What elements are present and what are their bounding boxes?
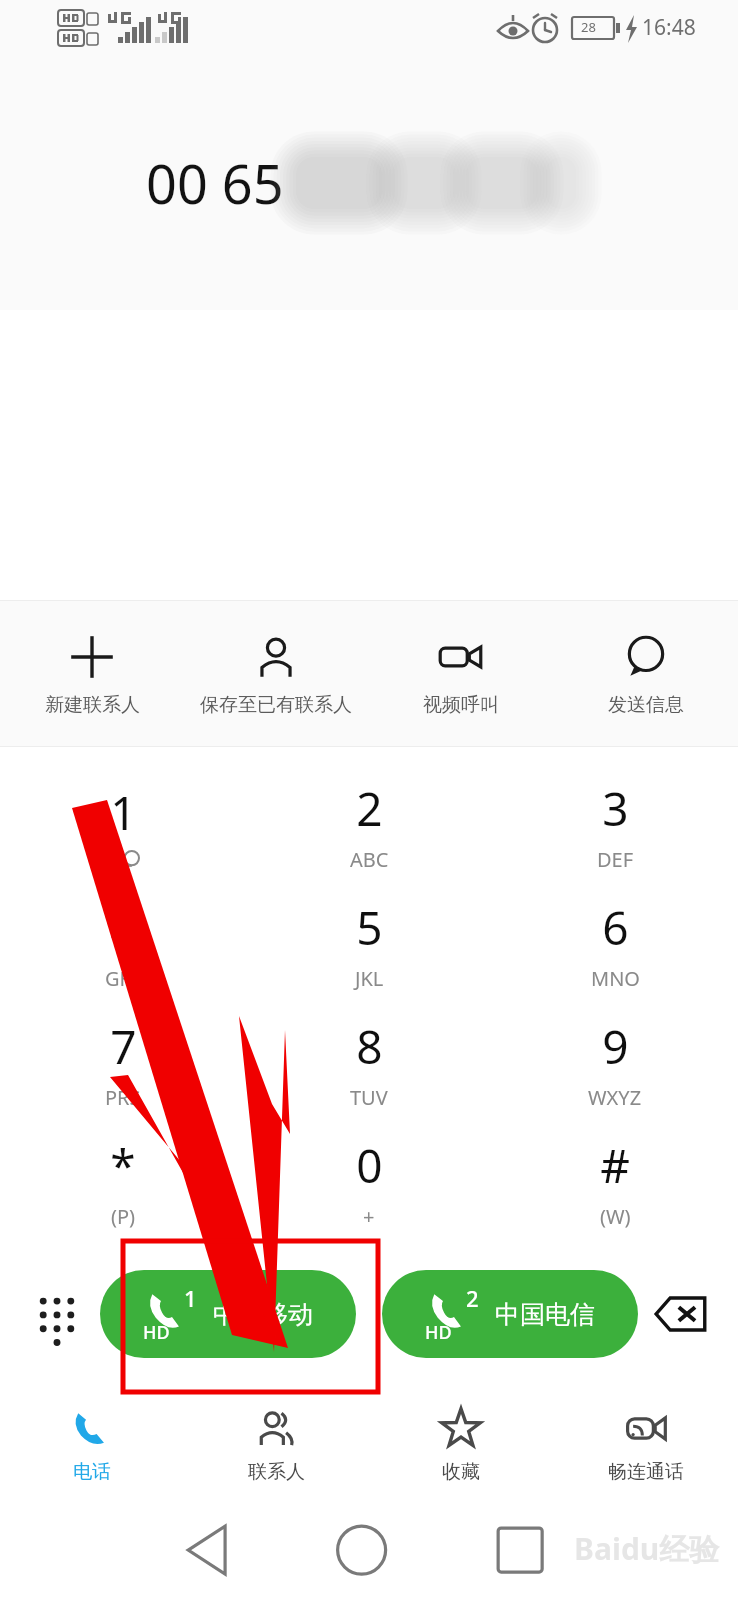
staticText: 2 [466, 1283, 479, 1313]
staticText: 收藏 [442, 1460, 480, 1484]
staticText: 1 [110, 781, 137, 844]
staticText: 0 [356, 1134, 383, 1197]
button[interactable]: 发送信息 [553, 601, 738, 746]
staticText: 9 [602, 1015, 629, 1078]
staticText: ABC [350, 846, 389, 873]
button[interactable]: # [492, 1122, 738, 1241]
staticText: 5 [356, 896, 383, 959]
staticText: * [110, 1134, 136, 1197]
button[interactable]: * [0, 1122, 246, 1241]
staticText: GHI [105, 965, 142, 992]
button[interactable]: 电话 [0, 1386, 184, 1504]
staticText: 2 [356, 777, 383, 840]
button[interactable]: Backspace [638, 1271, 724, 1357]
staticText: 视频呼叫 [423, 693, 499, 717]
staticText: TUV [350, 1084, 388, 1111]
button[interactable]: 5 [246, 884, 492, 1003]
staticText: 8 [356, 1015, 383, 1078]
staticText: Baidu经验 [574, 1528, 720, 1569]
button[interactable]: 2 [382, 1270, 638, 1358]
button[interactable]: 4 [0, 884, 246, 1003]
button[interactable]: 联系人 [184, 1386, 368, 1504]
staticText: # [600, 1134, 630, 1197]
button[interactable]: 畅连通话 [553, 1386, 738, 1504]
staticText: 新建联系人 [45, 693, 140, 717]
button[interactable]: 6 [492, 884, 738, 1003]
button[interactable]: 1 [0, 765, 246, 884]
staticText: + [363, 1203, 375, 1230]
staticText: 发送信息 [608, 693, 684, 717]
button[interactable]: 保存至已有联系人 [184, 601, 368, 746]
staticText: 4 [110, 896, 137, 959]
staticText: JKL [355, 965, 384, 992]
staticText: HD [143, 1320, 170, 1345]
staticText: 中国移动 [213, 1299, 313, 1330]
staticText: 3 [602, 777, 629, 840]
button[interactable]: 9 [492, 1003, 738, 1122]
button[interactable]: 1 [100, 1270, 356, 1358]
button[interactable]: 3 [492, 765, 738, 884]
staticText: 6 [602, 896, 629, 959]
staticText: HD [425, 1320, 452, 1345]
staticText: 联系人 [248, 1460, 305, 1484]
button[interactable]: 7 [0, 1003, 246, 1122]
button[interactable]: 收藏 [368, 1386, 553, 1504]
button[interactable]: 视频呼叫 [368, 601, 553, 746]
button[interactable]: 2 [246, 765, 492, 884]
button[interactable]: Hide keypad [14, 1271, 100, 1357]
button[interactable]: 0 [246, 1122, 492, 1241]
staticText: 中国电信 [495, 1299, 595, 1330]
staticText: 电话 [73, 1460, 111, 1484]
staticText: 7 [110, 1015, 137, 1078]
staticText: (P) [111, 1203, 136, 1230]
staticText: (W) [600, 1203, 631, 1230]
staticText: MNO [591, 965, 640, 992]
staticText: WXYZ [588, 1084, 642, 1111]
staticText: 畅连通话 [608, 1460, 684, 1484]
staticText: 保存至已有联系人 [200, 693, 352, 717]
staticText: 16:48 [642, 13, 696, 42]
staticText: 00 65 [146, 146, 284, 220]
staticText: 28 [581, 18, 596, 36]
staticText: 1 [184, 1283, 197, 1313]
staticText: DEF [597, 846, 634, 873]
staticText: PRS [105, 1084, 141, 1111]
button[interactable]: 8 [246, 1003, 492, 1122]
button[interactable]: 新建联系人 [0, 601, 184, 746]
